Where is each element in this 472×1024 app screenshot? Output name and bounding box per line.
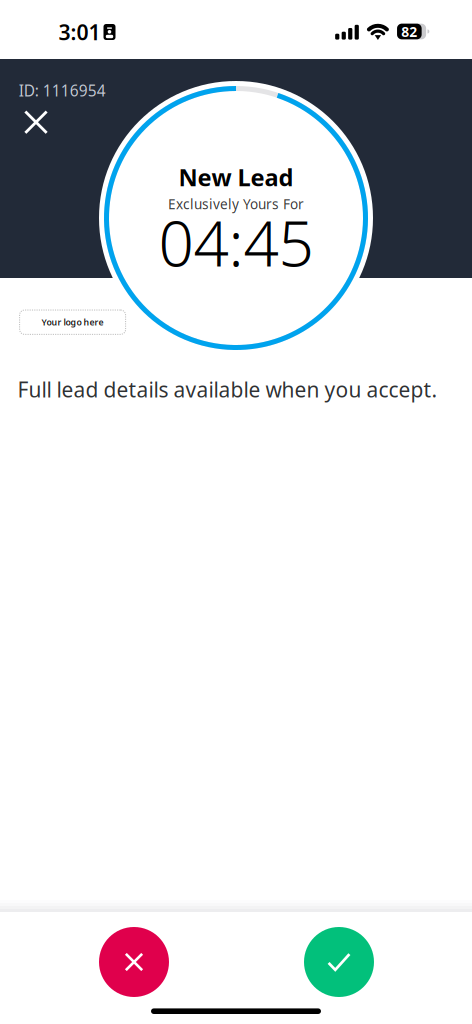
staticText: Your logo here <box>42 316 104 328</box>
staticText: Exclusively Yours For <box>168 195 304 213</box>
staticText: 82 <box>401 22 417 41</box>
staticText: 3:01 <box>59 18 101 46</box>
staticText: ID: 1116954 <box>19 80 106 101</box>
staticText: Full lead details available when you acc… <box>17 375 437 404</box>
staticText: 04:45 <box>158 200 313 285</box>
button[interactable]: Decline <box>99 927 169 997</box>
button[interactable]: Close <box>13 99 59 145</box>
staticText: New Lead <box>178 161 293 193</box>
button[interactable]: Accept <box>304 927 374 997</box>
